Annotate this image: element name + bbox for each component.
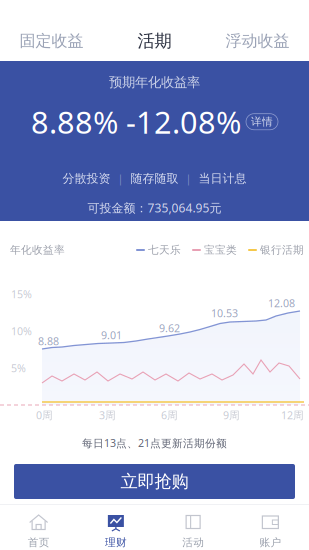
button[interactable]: 账户 (232, 504, 309, 550)
staticText: 每日13点、21点更新活期份额 (82, 436, 227, 450)
button[interactable]: 首页 (0, 504, 77, 550)
button[interactable]: 分散投资 (62, 171, 110, 186)
button[interactable]: 固定收益 (0, 21, 103, 61)
staticText: 理财 (105, 536, 127, 549)
staticText: 随存随取 (130, 171, 178, 186)
staticText: 8.88 (38, 334, 59, 348)
staticText: 浮动收益 (225, 31, 289, 51)
button[interactable]: 详情 (246, 114, 278, 130)
staticText: | (117, 171, 123, 186)
staticText: 活期 (137, 30, 171, 52)
staticText: 12.08 (268, 296, 295, 310)
staticText: 0周 (36, 408, 53, 422)
staticText: 10.53 (211, 306, 238, 320)
button[interactable]: 立即抢购 (14, 464, 295, 499)
button[interactable]: 理财 (77, 504, 154, 550)
staticText: 6周 (161, 408, 178, 422)
button[interactable]: 浮动收益 (206, 21, 309, 61)
staticText: 可投金额：735,064.95元 (87, 200, 221, 216)
staticText: 年化收益率 (10, 243, 65, 256)
staticText: 8.88% -12.08% (31, 101, 241, 142)
staticText: | (185, 171, 191, 186)
staticText: 分散投资 (62, 171, 110, 186)
staticText: 宝宝类 (204, 243, 237, 256)
staticText: 当日计息 (198, 171, 246, 186)
staticText: 10% (11, 324, 32, 338)
staticText: 预期年化收益率 (109, 74, 200, 90)
staticText: 15% (11, 287, 32, 301)
staticText: 银行活期 (260, 243, 304, 256)
staticText: 账户 (259, 536, 281, 549)
button[interactable]: 随存随取 (130, 171, 178, 186)
staticText: 12周 (281, 408, 304, 422)
staticText: 9周 (223, 408, 240, 422)
button[interactable]: 活期 (103, 21, 206, 61)
staticText: 立即抢购 (120, 471, 188, 492)
staticText: 七天乐 (148, 243, 181, 256)
staticText: 详情 (251, 115, 273, 128)
staticText: 固定收益 (19, 31, 83, 51)
staticText: 活动 (182, 536, 204, 549)
button[interactable]: 当日计息 (198, 171, 246, 186)
staticText: 9.62 (159, 321, 180, 335)
button[interactable]: 活动 (154, 504, 232, 550)
staticText: 9.01 (101, 328, 122, 342)
staticText: 3周 (99, 408, 116, 422)
staticText: 首页 (28, 536, 50, 549)
staticText: 5% (11, 361, 26, 375)
